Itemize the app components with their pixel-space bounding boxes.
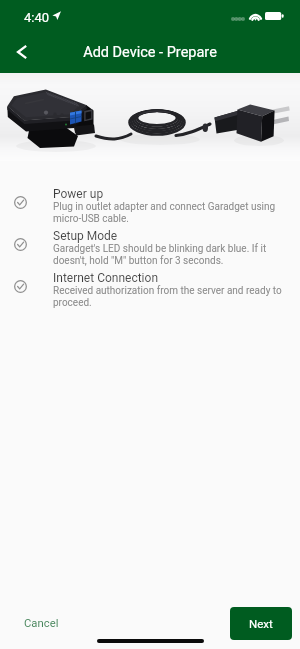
staticText: Add Device - Prepare <box>83 44 217 61</box>
button[interactable]: Cancel <box>14 610 69 637</box>
staticText: Power up <box>53 187 104 201</box>
button[interactable]: Power up <box>0 187 300 225</box>
button[interactable]: Back <box>0 30 44 73</box>
staticText: Next <box>249 617 273 630</box>
button[interactable]: Next <box>230 607 292 640</box>
staticText: Setup Mode <box>53 229 118 243</box>
button[interactable]: Setup Mode <box>0 229 300 267</box>
staticText: Cancel <box>24 617 59 630</box>
staticText: Plug in outlet adapter and connect Garad… <box>53 201 286 225</box>
staticText: Received authorization from the server a… <box>53 285 286 309</box>
staticText: Garadget's LED should be blinking dark b… <box>53 243 286 267</box>
staticText: Internet Connection <box>53 271 159 285</box>
button[interactable]: Internet Connection <box>0 271 300 309</box>
staticText: 4:40 <box>24 10 50 25</box>
